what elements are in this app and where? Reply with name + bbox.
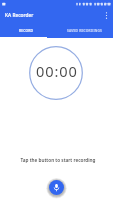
button[interactable]: More options bbox=[99, 8, 113, 22]
staticText: 00:00 bbox=[36, 61, 78, 81]
staticText: RECORD bbox=[19, 28, 34, 32]
button[interactable]: SAVED RECORDINGS bbox=[57, 22, 113, 37]
staticText: Tap the button to start recording bbox=[20, 157, 96, 163]
button[interactable]: RECORD bbox=[0, 22, 52, 37]
staticText: KA Recorder bbox=[5, 12, 34, 19]
staticText: SAVED RECORDINGS bbox=[67, 28, 103, 32]
button[interactable]: Start recording bbox=[47, 178, 66, 197]
